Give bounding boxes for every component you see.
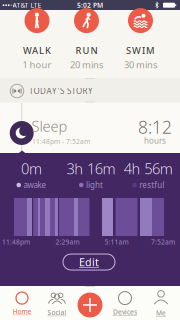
button[interactable]: Social [42,291,72,317]
staticText: SWIM [126,44,155,56]
staticText: light [86,180,103,190]
button[interactable]: Log activity [77,292,102,317]
staticText: 4h 56m [124,159,173,178]
staticText: 1 hour [22,58,51,71]
staticText: 7:52am [151,238,175,246]
staticText: 30 mins [124,58,157,71]
staticText: 11:48pm [2,238,30,246]
button[interactable]: Home [7,291,37,317]
button[interactable]: Sleep [0,103,180,153]
staticText: Me [156,309,166,317]
staticText: 5:02 PM [77,1,103,10]
staticText: 5:11am [104,238,128,246]
staticText: hours [144,135,166,146]
staticText: 20 mins [70,58,103,71]
staticText: Devices [113,308,137,316]
staticText: TODAY'S STORY [29,86,93,96]
staticText: Edit [79,255,99,269]
staticText: 2:29am [55,238,79,246]
staticText: Social [47,308,66,317]
staticText: AT&T LTE [12,1,41,10]
button[interactable]: TODAY'S STORY [0,78,180,102]
staticText: Home [12,307,31,316]
staticText: 0m [21,159,42,178]
staticText: 3h 16m [66,159,115,178]
staticText: WALK [23,44,51,56]
staticText: 11:48pm - 7:52am [32,137,90,146]
button[interactable]: Edit [63,254,115,270]
staticText: RUN [75,44,97,56]
button[interactable]: Devices [108,291,142,317]
staticText: awake [23,180,46,190]
staticText: Sleep [31,116,67,136]
button[interactable]: Me [148,291,174,317]
staticText: 8:12 [138,115,172,138]
staticText: restful [139,180,164,190]
